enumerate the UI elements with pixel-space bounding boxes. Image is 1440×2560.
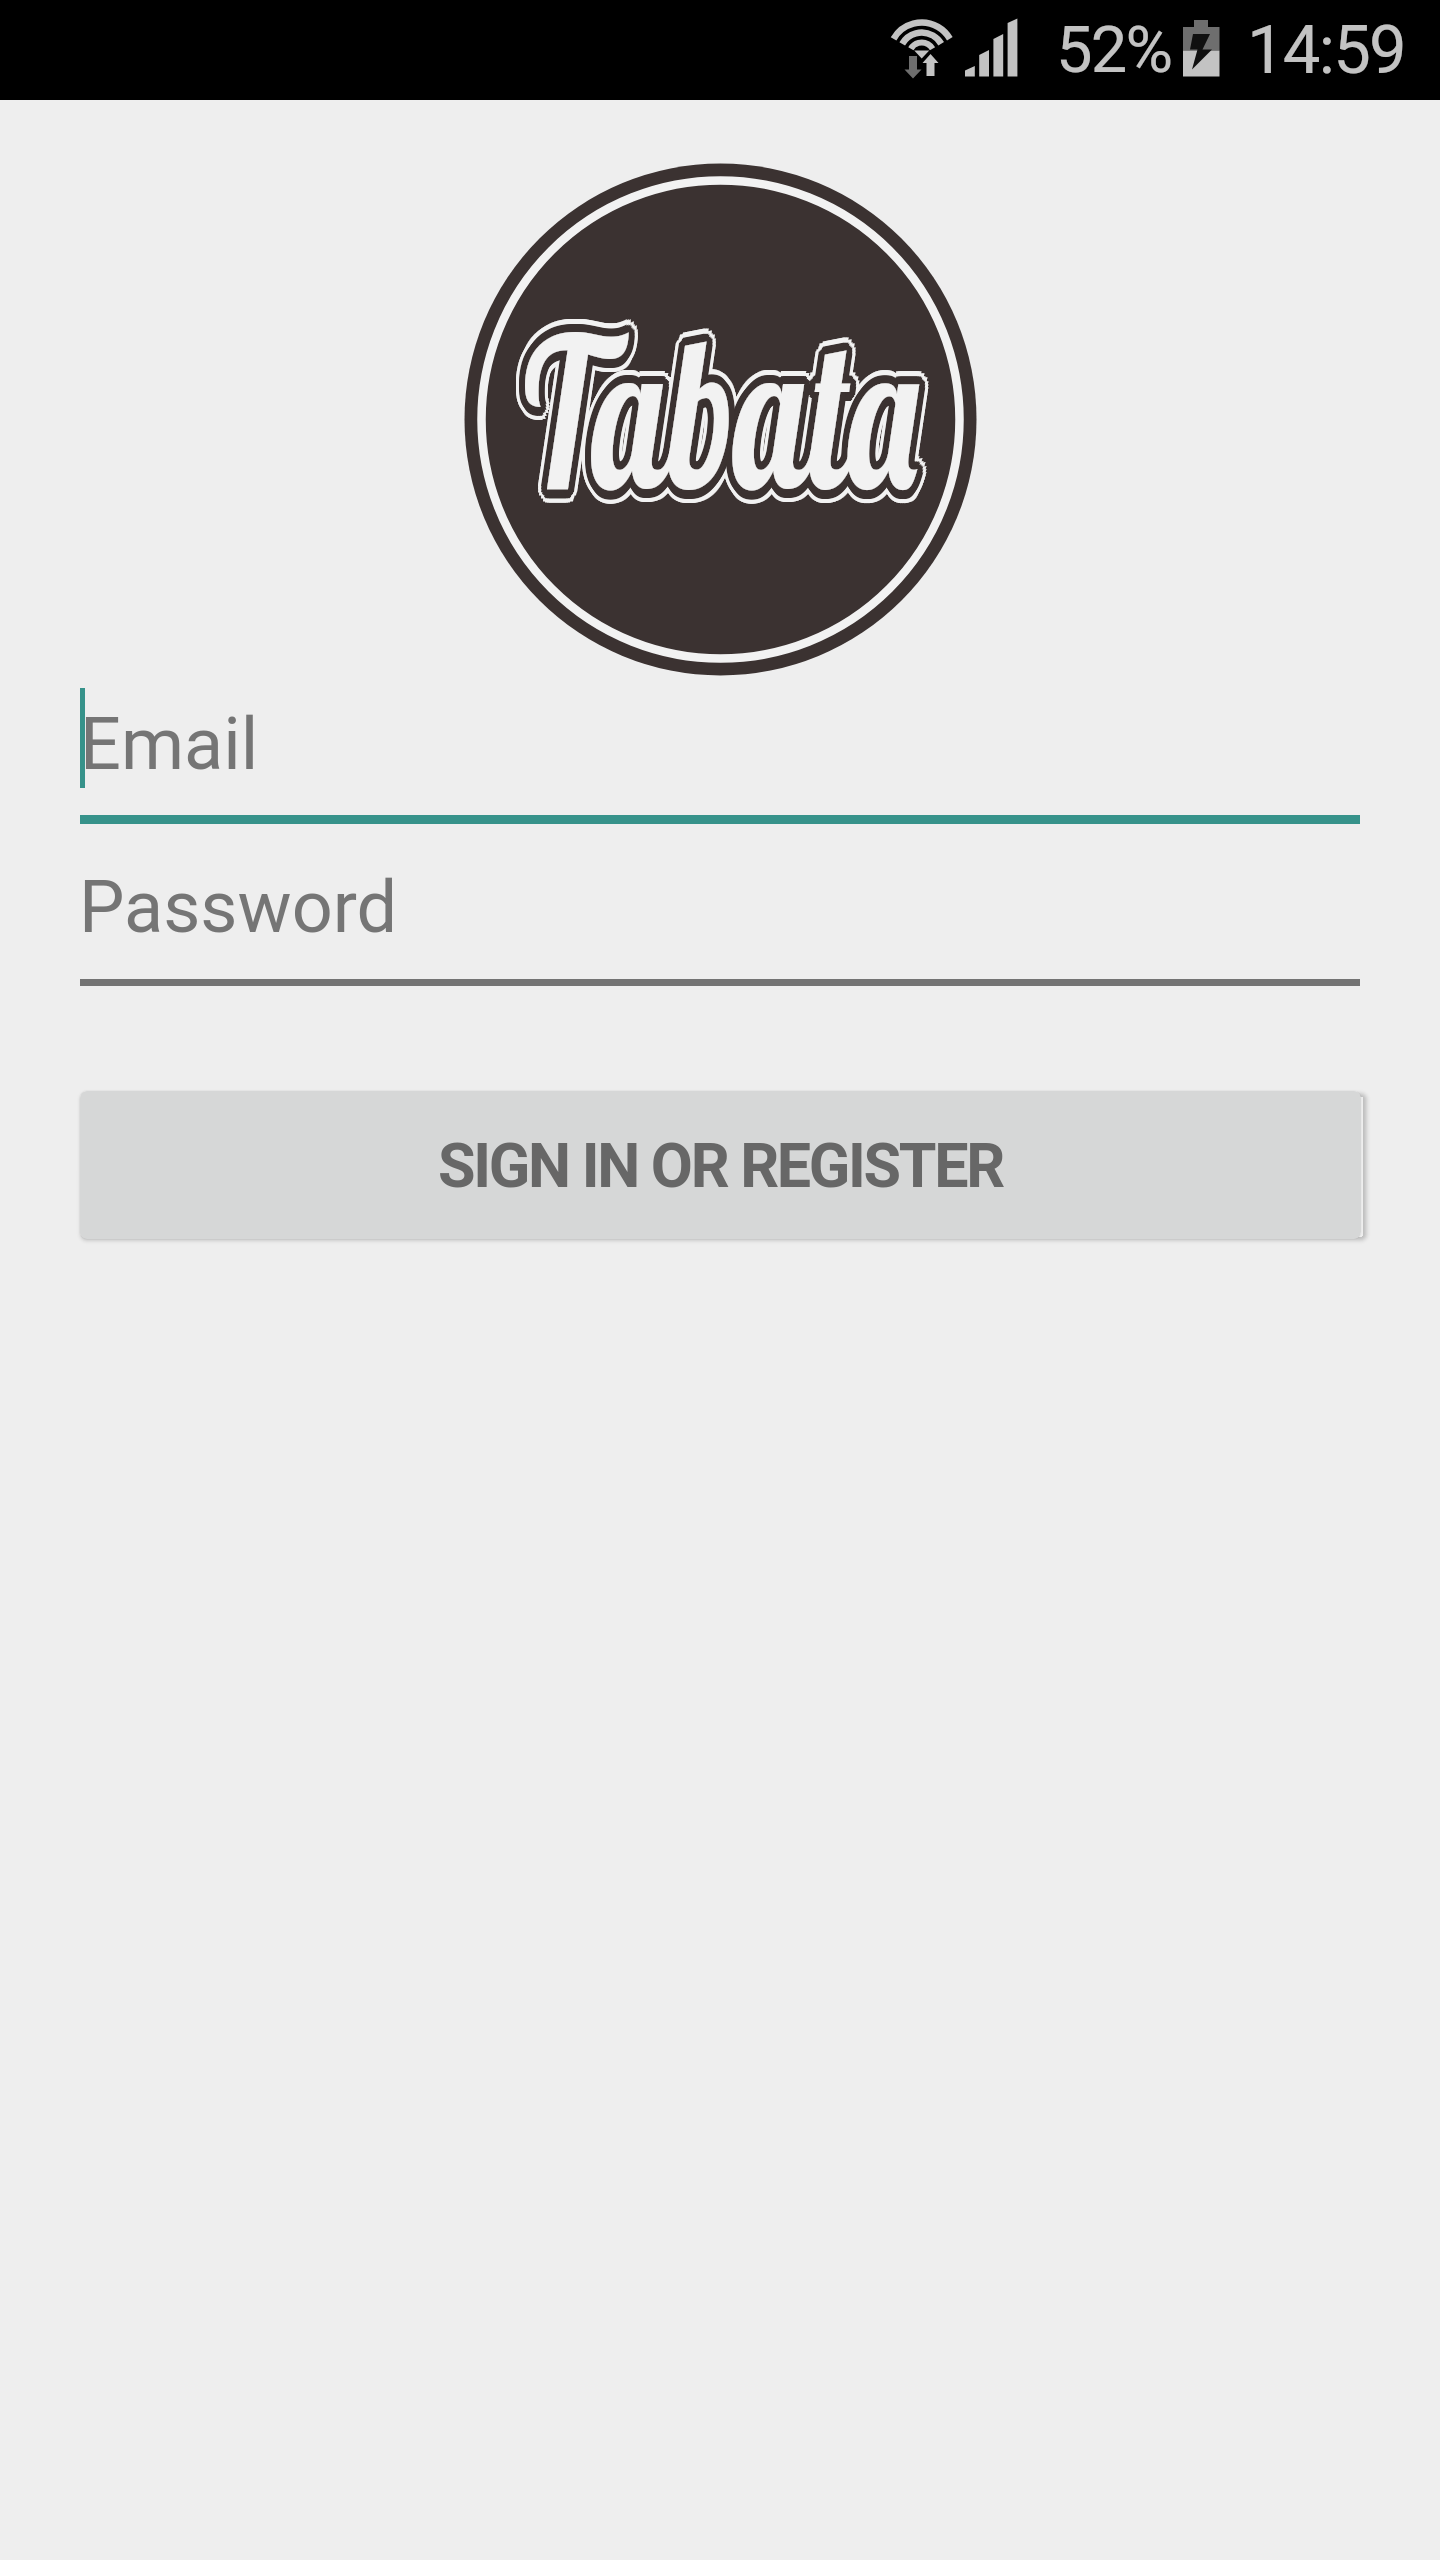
- staticText: Tabata: [511, 285, 920, 546]
- staticText: Tabata: [518, 267, 927, 528]
- staticText: Tabata: [521, 269, 930, 530]
- staticText: Tabata: [514, 267, 923, 528]
- staticText: Tabata: [524, 286, 933, 547]
- staticText: Tabata: [518, 272, 927, 533]
- staticText: Tabata: [520, 286, 929, 547]
- staticText: Tabata: [516, 289, 925, 550]
- staticText: Tabata: [522, 280, 931, 541]
- staticText: Tabata: [516, 267, 925, 528]
- staticText: Tabata: [512, 292, 921, 553]
- staticText: Tabata: [520, 275, 929, 536]
- staticText: Tabata: [512, 286, 921, 547]
- staticText: Tabata: [511, 269, 920, 530]
- staticText: Tabata: [514, 272, 923, 533]
- button[interactable]: Password: [80, 860, 1360, 986]
- staticText: Tabata: [525, 280, 934, 541]
- staticText: Email: [80, 702, 259, 786]
- staticText: Tabata: [522, 272, 931, 533]
- staticText: Tabata: [519, 273, 928, 534]
- staticText: Tabata: [521, 292, 930, 553]
- staticText: Tabata: [521, 276, 930, 537]
- staticText: Tabata: [524, 273, 933, 534]
- staticText: Tabata: [522, 289, 931, 550]
- staticText: Tabata: [518, 293, 927, 554]
- button[interactable]: Email: [80, 688, 1360, 824]
- staticText: Tabata: [507, 278, 916, 539]
- staticText: Tabata: [519, 288, 928, 549]
- staticText: Tabata: [512, 275, 921, 536]
- staticText: Tabata: [514, 293, 923, 554]
- staticText: Tabata: [521, 285, 930, 546]
- staticText: Tabata: [510, 283, 919, 544]
- staticText: Tabata: [522, 278, 931, 539]
- staticText: Tabata: [510, 280, 919, 541]
- staticText: Tabata: [513, 273, 922, 534]
- other: Tabata logo: [464, 163, 977, 676]
- staticText: Tabata: [514, 289, 923, 550]
- button[interactable]: SIGN IN OR REGISTER: [80, 1091, 1361, 1239]
- staticText: Tabata: [516, 293, 925, 554]
- staticText: Tabata: [510, 278, 919, 539]
- staticText: 52%: [1056, 12, 1172, 88]
- staticText: Tabata: [525, 283, 934, 544]
- staticText: Tabata: [508, 286, 917, 547]
- staticText: Tabata: [508, 275, 917, 536]
- staticText: Tabata: [507, 280, 916, 541]
- staticText: Tabata: [510, 289, 919, 550]
- staticText: Tabata: [513, 288, 922, 549]
- staticText: SIGN IN OR REGISTER: [438, 1130, 1003, 1201]
- staticText: Tabata: [516, 280, 925, 541]
- staticText: Tabata: [507, 283, 916, 544]
- staticText: Tabata: [522, 283, 931, 544]
- staticText: 14:59: [1247, 11, 1405, 90]
- staticText: Tabata: [518, 289, 927, 550]
- staticText: Password: [79, 865, 398, 949]
- staticText: Tabata: [516, 272, 925, 533]
- staticText: Tabata: [511, 276, 920, 537]
- staticText: Tabata: [510, 272, 919, 533]
- staticText: Tabata: [525, 278, 934, 539]
